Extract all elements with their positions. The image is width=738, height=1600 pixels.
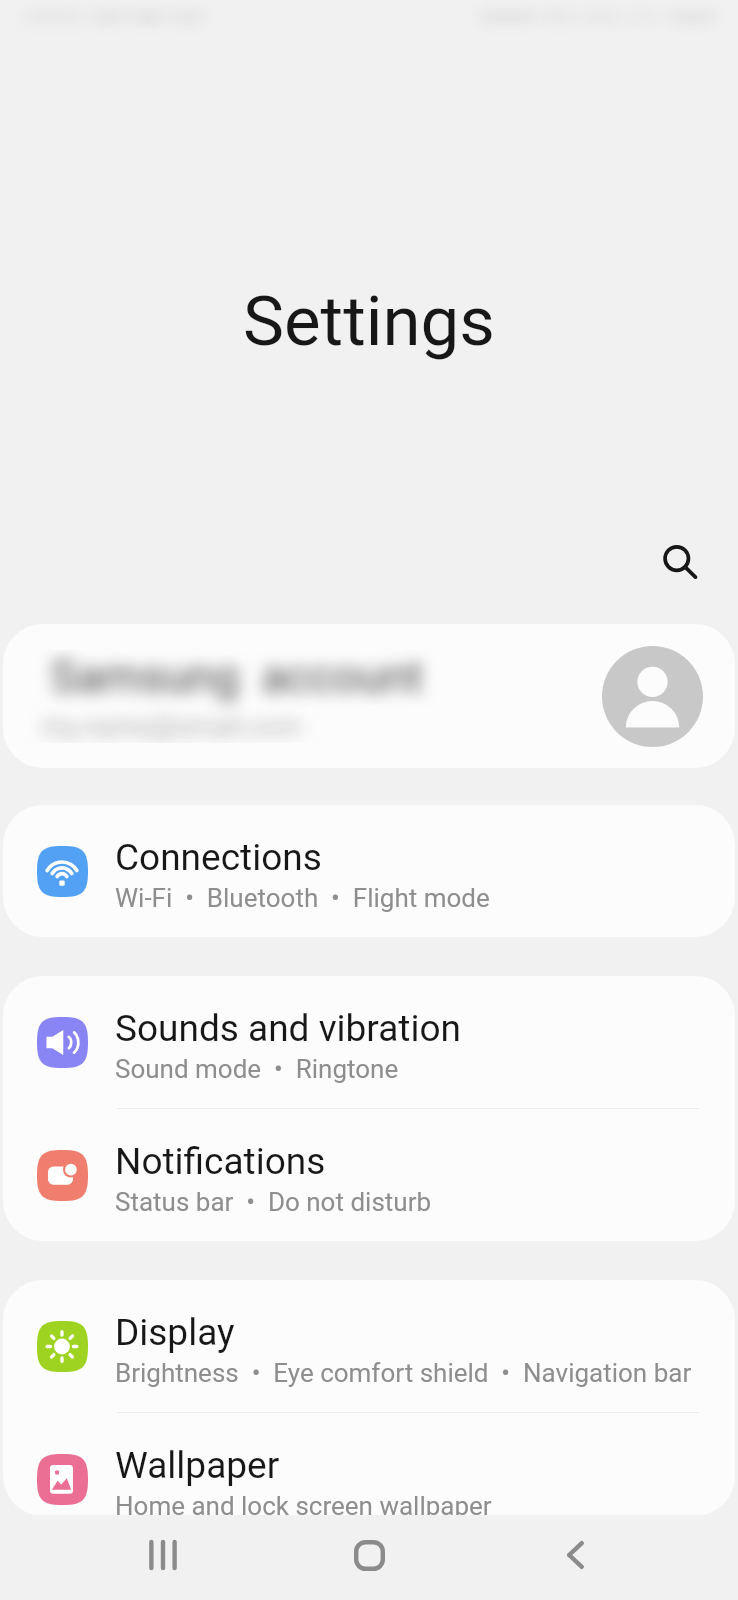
staticText: Notifications	[115, 1140, 326, 1183]
staticText: my.name@email.com	[28, 711, 302, 743]
button[interactable]: Sounds and vibration	[3, 976, 735, 1108]
staticText: Display	[115, 1311, 235, 1354]
staticText: Samsung account	[28, 650, 424, 703]
button[interactable]: Samsung account	[3, 624, 735, 768]
staticText: Connections	[115, 836, 322, 879]
button[interactable]: Home	[334, 1520, 404, 1590]
button[interactable]: Connections	[3, 805, 735, 937]
staticText: Wi-Fi • Bluetooth • Flight mode	[115, 883, 490, 913]
staticText: Settings	[0, 281, 738, 362]
staticText: Status bar • Do not disturb	[115, 1187, 432, 1217]
staticText: Wallpaper	[115, 1444, 280, 1487]
staticText: Home and lock screen wallpaper	[115, 1491, 492, 1516]
button[interactable]: Search	[648, 530, 712, 594]
button[interactable]: Display	[3, 1280, 735, 1412]
button[interactable]: Back	[540, 1520, 610, 1590]
button[interactable]: Wallpaper	[3, 1413, 735, 1516]
button[interactable]: Recent apps	[128, 1520, 198, 1590]
staticText: Sounds and vibration	[115, 1007, 461, 1050]
staticText: Brightness • Eye comfort shield • Naviga…	[115, 1358, 692, 1388]
staticText: Sound mode • Ringtone	[115, 1054, 399, 1084]
button[interactable]: Notifications	[3, 1109, 735, 1241]
